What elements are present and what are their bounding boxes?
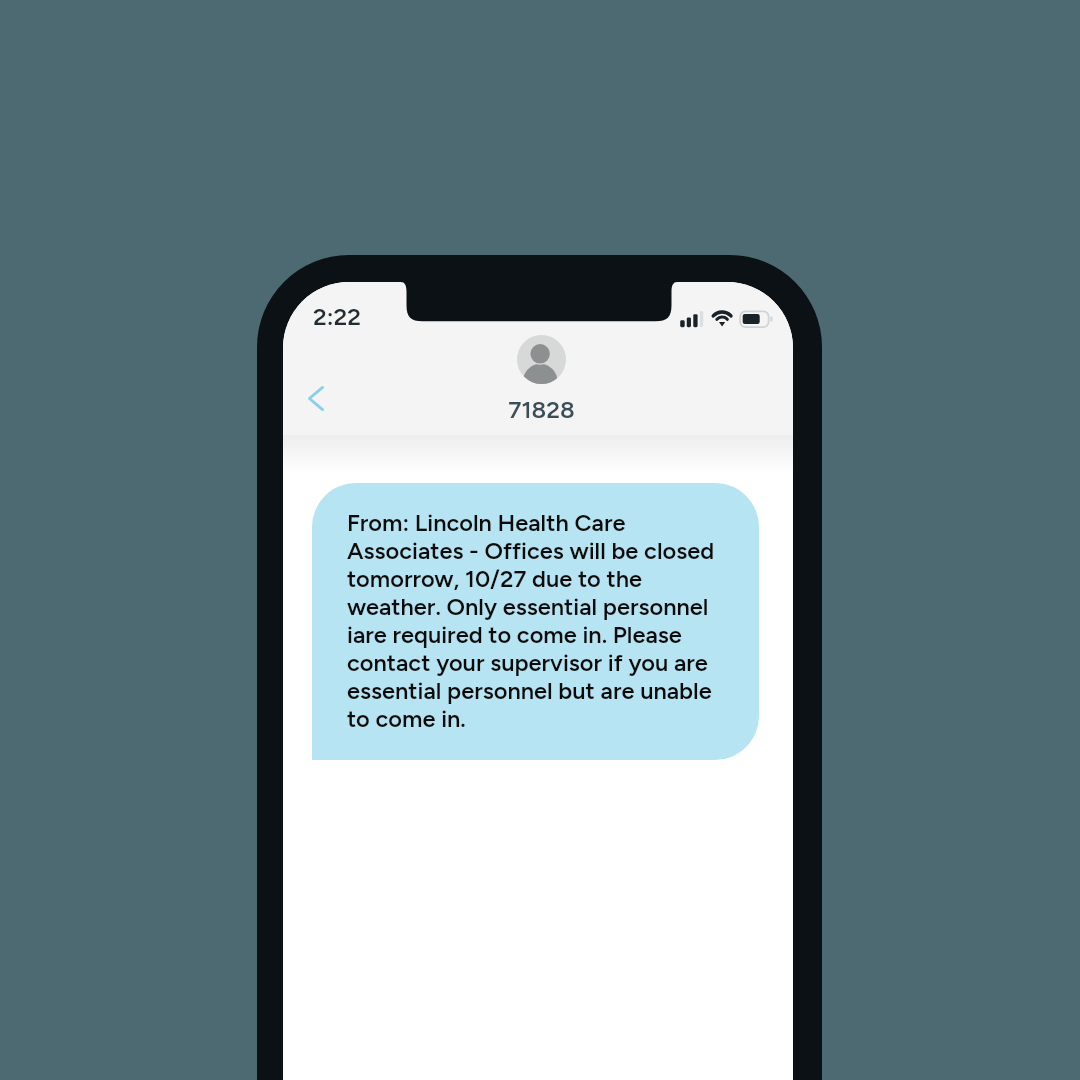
button[interactable]: From: Lincoln Health Care Associates - O…: [312, 483, 759, 760]
button[interactable]: 71828: [508, 395, 575, 424]
button[interactable]: Back: [293, 375, 339, 421]
staticText: From: Lincoln Health Care Associates - O…: [347, 509, 724, 733]
button[interactable]: Contact details: [517, 335, 566, 384]
staticText: 71828: [508, 395, 575, 424]
staticText: 2:22: [313, 302, 361, 331]
